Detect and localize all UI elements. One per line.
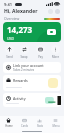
staticText: Home <box>5 124 13 128</box>
button[interactable]: Cards <box>18 118 31 128</box>
button[interactable]: More <box>49 45 61 59</box>
button[interactable]: Pay <box>34 45 46 59</box>
button[interactable]: Menu <box>49 118 62 128</box>
staticText: Swap <box>20 55 28 59</box>
button[interactable]: Notifications <box>48 9 53 14</box>
staticText: Activity <box>13 96 26 101</box>
button[interactable]: Activity <box>3 93 61 107</box>
staticText: Send <box>6 55 13 59</box>
button[interactable]: Link your account <box>3 62 61 73</box>
staticText: Rewards <box>13 78 28 83</box>
staticText: More <box>52 55 59 59</box>
staticText: 14,273 <box>7 24 33 35</box>
staticText: Takes 2 minutes <box>13 68 35 72</box>
staticText: Stats <box>37 124 43 128</box>
staticText: Pay <box>38 55 43 59</box>
staticText: Cards <box>21 124 28 128</box>
button[interactable]: Send <box>3 45 15 59</box>
staticText: USD <box>7 36 15 41</box>
button[interactable]: Rewards <box>3 75 61 91</box>
button[interactable]: 14,273 <box>3 22 61 42</box>
button[interactable]: Stats <box>33 118 46 128</box>
button[interactable]: Swap <box>18 45 30 59</box>
staticText: 9:41 <box>4 2 12 7</box>
staticText: Overview <box>4 16 20 21</box>
button[interactable]: Home <box>2 118 15 128</box>
staticText: Menu <box>52 124 60 128</box>
button[interactable]: Profile <box>55 9 60 14</box>
staticText: Link your account <box>13 63 44 68</box>
other: Card <box>47 29 56 35</box>
staticText: Hi, Alexander <box>4 8 38 15</box>
